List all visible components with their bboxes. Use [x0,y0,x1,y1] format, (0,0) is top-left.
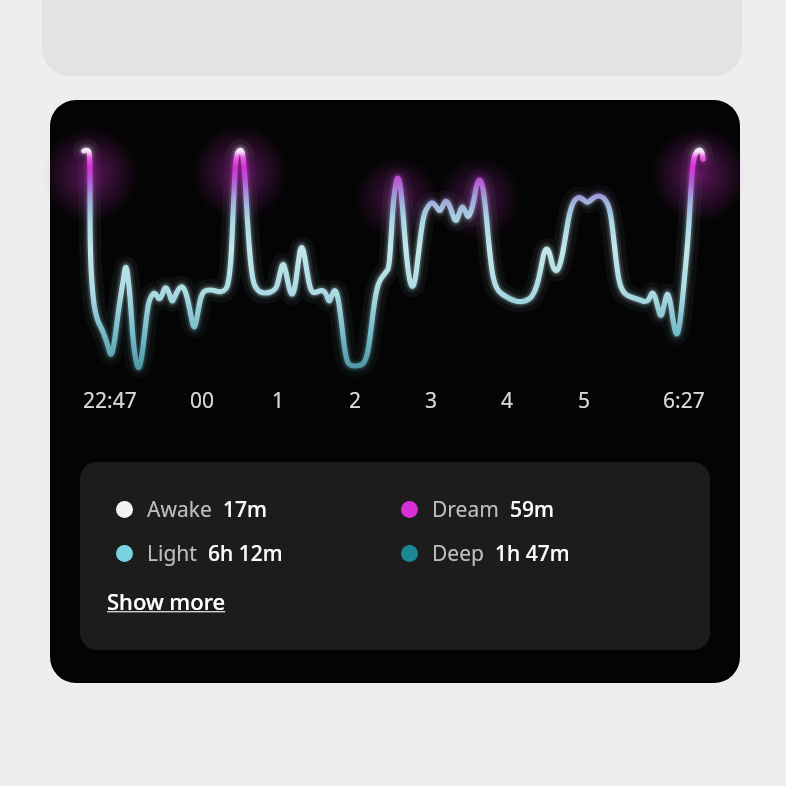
button[interactable]: Dream [401,495,554,524]
button[interactable]: Show more [107,586,226,616]
staticText: 00 [190,386,215,415]
staticText: 5 [578,386,591,415]
staticText: Deep [432,539,484,568]
staticText: 6h 12m [208,539,283,568]
staticText: Light [147,539,197,568]
staticText: 6:27 [663,386,705,415]
staticText: 3 [425,386,438,415]
staticText: 2 [349,386,362,415]
staticText: Awake [147,495,212,524]
staticText: 1h 47m [495,539,570,568]
staticText: 22:47 [83,386,137,415]
staticText: 59m [510,495,554,524]
staticText: Dream [432,495,499,524]
staticText: 17m [223,495,267,524]
button[interactable]: Light [116,539,283,568]
button[interactable]: Awake [116,495,267,524]
staticText: 1 [272,386,285,415]
staticText: Show more [107,586,226,616]
button[interactable]: Deep [401,539,570,568]
staticText: 4 [501,386,514,415]
